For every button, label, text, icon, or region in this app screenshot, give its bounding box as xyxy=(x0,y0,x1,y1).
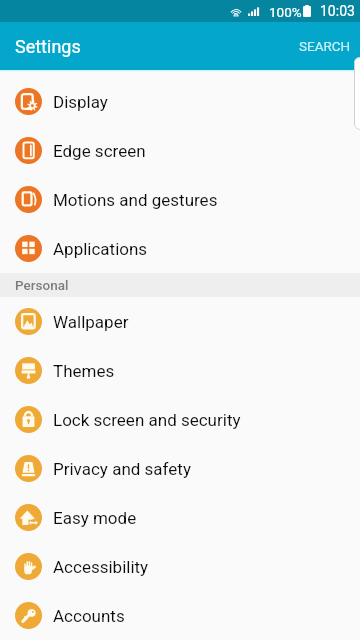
button[interactable]: Easy mode xyxy=(0,493,360,542)
staticText: Easy mode xyxy=(53,508,137,528)
button[interactable]: Display xyxy=(0,77,360,126)
staticText: Accounts xyxy=(53,606,125,626)
staticText: Accessibility xyxy=(53,557,149,577)
staticText: Motions and gestures xyxy=(53,190,218,210)
button[interactable]: Wallpaper xyxy=(0,297,360,346)
staticText: Themes xyxy=(53,361,115,381)
staticText: Personal xyxy=(15,277,69,293)
staticText: Privacy and safety xyxy=(53,459,191,479)
button[interactable]: Applications xyxy=(0,224,360,273)
button[interactable]: Accounts xyxy=(0,591,360,640)
button[interactable]: Lock screen and security xyxy=(0,395,360,444)
button[interactable]: Privacy and safety xyxy=(0,444,360,493)
staticText: 10:03 xyxy=(320,3,355,19)
button[interactable]: Motions and gestures xyxy=(0,175,360,224)
button[interactable]: Accessibility xyxy=(0,542,360,591)
staticText: Settings xyxy=(15,36,81,57)
staticText: Wallpaper xyxy=(53,312,129,332)
staticText: Applications xyxy=(53,239,148,259)
button[interactable]: SEARCH xyxy=(288,26,360,66)
button[interactable]: Edge screen xyxy=(0,126,360,175)
staticText: SEARCH xyxy=(299,38,351,54)
staticText: Edge screen xyxy=(53,141,146,161)
button[interactable]: Themes xyxy=(0,346,360,395)
staticText: 100% xyxy=(269,4,302,20)
staticText: Lock screen and security xyxy=(53,410,241,430)
staticText: Display xyxy=(53,92,108,112)
